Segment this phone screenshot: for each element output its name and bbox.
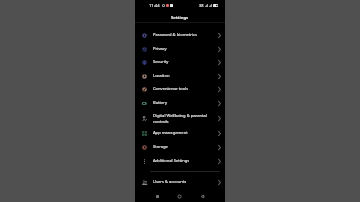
staticText: Battery <box>153 100 168 106</box>
button[interactable]: Privacy <box>135 42 225 56</box>
button[interactable]: Users & accounts <box>135 175 225 189</box>
button[interactable]: Battery <box>135 96 225 110</box>
button[interactable]: Storage <box>135 140 225 154</box>
staticText: 38 <box>199 3 204 8</box>
staticText: Digital Wellbeing & parental controls <box>153 113 207 124</box>
staticText: Location <box>153 73 170 79</box>
button[interactable]: Additional Settings <box>135 154 225 168</box>
staticText: Security <box>153 59 169 65</box>
staticText: Password & biometrics <box>153 32 197 38</box>
staticText: Convenience tools <box>153 86 189 92</box>
staticText: Settings <box>171 15 189 21</box>
button[interactable]: Location <box>135 69 225 83</box>
button[interactable]: Digital Wellbeing & parental controls <box>135 110 225 127</box>
button[interactable]: Recent apps <box>152 191 163 202</box>
button[interactable]: Password & biometrics <box>135 28 225 42</box>
staticText: Storage <box>153 144 168 150</box>
staticText: App management <box>153 130 188 136</box>
button[interactable]: Security <box>135 55 225 69</box>
button[interactable]: Convenience tools <box>135 82 225 96</box>
staticText: 11:44 <box>149 3 160 9</box>
button[interactable]: Home <box>174 191 185 202</box>
button[interactable]: Back <box>197 191 208 202</box>
staticText: Privacy <box>153 46 167 52</box>
button[interactable]: App management <box>135 126 225 140</box>
staticText: Additional Settings <box>153 158 190 164</box>
staticText: Users & accounts <box>153 179 187 185</box>
